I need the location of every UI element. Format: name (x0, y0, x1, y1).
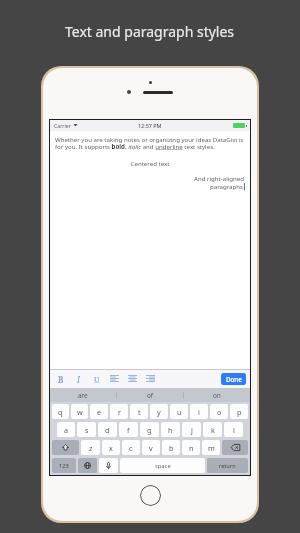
staticText: e (97, 407, 102, 417)
button[interactable]: e (90, 404, 108, 419)
staticText: n (189, 443, 194, 453)
staticText: Whether you are taking notes or organizi… (55, 135, 245, 151)
button[interactable]: Italic (73, 373, 84, 384)
staticText: j (191, 425, 193, 435)
staticText: U (94, 374, 100, 383)
staticText: m (208, 443, 215, 453)
staticText: i (198, 407, 200, 417)
button[interactable]: space (120, 458, 205, 473)
button[interactable]: Align left (109, 373, 120, 384)
button[interactable]: q (52, 404, 69, 419)
button[interactable]: Backspace (222, 440, 248, 455)
button[interactable]: Shift (52, 440, 79, 455)
staticText: paragraphs (210, 182, 243, 190)
staticText: 12:57 PM (138, 122, 162, 129)
button[interactable]: z (81, 440, 100, 455)
button[interactable]: f (119, 422, 138, 437)
button[interactable]: of (117, 388, 183, 402)
button[interactable]: t (130, 404, 148, 419)
staticText: u (177, 407, 182, 417)
button[interactable]: u (170, 404, 188, 419)
button[interactable]: y (150, 404, 168, 419)
button[interactable]: Underline (91, 373, 102, 384)
staticText: v (149, 443, 153, 453)
staticText: 123 (59, 462, 69, 470)
staticText: y (157, 407, 161, 417)
button[interactable]: Align right (145, 373, 156, 384)
button[interactable]: Align center (127, 373, 138, 384)
button[interactable]: b (162, 440, 180, 455)
staticText: z (89, 443, 93, 453)
staticText: a (64, 425, 69, 435)
staticText: space (155, 462, 171, 470)
staticText: l (233, 425, 235, 435)
staticText: s (85, 425, 89, 435)
button[interactable]: d (98, 422, 117, 437)
staticText: I (77, 374, 80, 383)
staticText: f (127, 425, 130, 435)
button[interactable]: 123 (52, 458, 76, 473)
button[interactable]: o (210, 404, 228, 419)
button[interactable]: Switch keyboard (78, 458, 97, 473)
button[interactable]: x (102, 440, 120, 455)
staticText: g (147, 425, 152, 435)
staticText: r (118, 407, 121, 417)
button[interactable]: j (182, 422, 201, 437)
staticText: Done (226, 375, 242, 383)
staticText: w (77, 407, 83, 417)
button[interactable]: v (142, 440, 160, 455)
button[interactable]: are (50, 388, 116, 402)
staticText: B (58, 374, 64, 383)
button[interactable]: Home (140, 485, 161, 506)
button[interactable]: p (230, 404, 248, 419)
button[interactable]: g (140, 422, 159, 437)
staticText: of (147, 391, 154, 400)
button[interactable]: Bold (55, 373, 66, 384)
button[interactable]: n (182, 440, 200, 455)
staticText: b (169, 443, 174, 453)
button[interactable]: Dictate (99, 458, 118, 473)
button[interactable]: s (77, 422, 96, 437)
staticText: Text and paragraph styles (65, 22, 235, 41)
staticText: h (168, 425, 173, 435)
staticText: return (219, 462, 236, 470)
staticText: x (109, 443, 113, 453)
staticText: c (129, 443, 133, 453)
button[interactable]: w (71, 404, 88, 419)
staticText: o (217, 407, 222, 417)
staticText: Carrier (54, 122, 71, 129)
button[interactable]: return (207, 458, 248, 473)
staticText: q (58, 407, 63, 417)
button[interactable]: l (224, 422, 243, 437)
staticText: p (237, 407, 242, 417)
staticText: d (105, 425, 110, 435)
staticText: k (211, 425, 215, 435)
button[interactable]: Done (221, 373, 246, 385)
button[interactable]: a (57, 422, 75, 437)
button[interactable]: c (122, 440, 140, 455)
button[interactable]: m (202, 440, 220, 455)
staticText: And right-aligned (194, 174, 245, 182)
button[interactable]: k (203, 422, 222, 437)
staticText: t (138, 407, 141, 417)
button[interactable]: i (190, 404, 208, 419)
button[interactable]: r (110, 404, 128, 419)
staticText: Centered text (55, 159, 245, 167)
button[interactable]: h (161, 422, 180, 437)
staticText: on (213, 391, 221, 400)
staticText: are (78, 391, 88, 400)
button[interactable]: on (184, 388, 250, 402)
